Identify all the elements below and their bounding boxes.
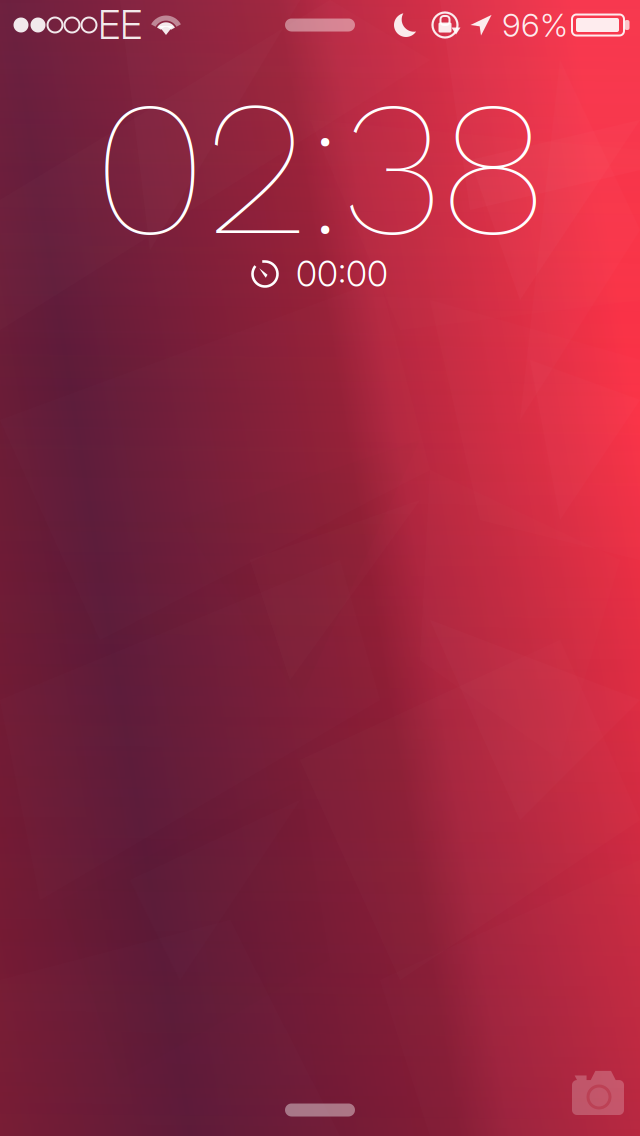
button[interactable]: Camera [566, 1064, 630, 1120]
staticText: EE [98, 2, 142, 48]
staticText: 96% [502, 6, 568, 44]
staticText: 02:38 [94, 57, 546, 279]
staticText: 00:00 [296, 253, 388, 295]
